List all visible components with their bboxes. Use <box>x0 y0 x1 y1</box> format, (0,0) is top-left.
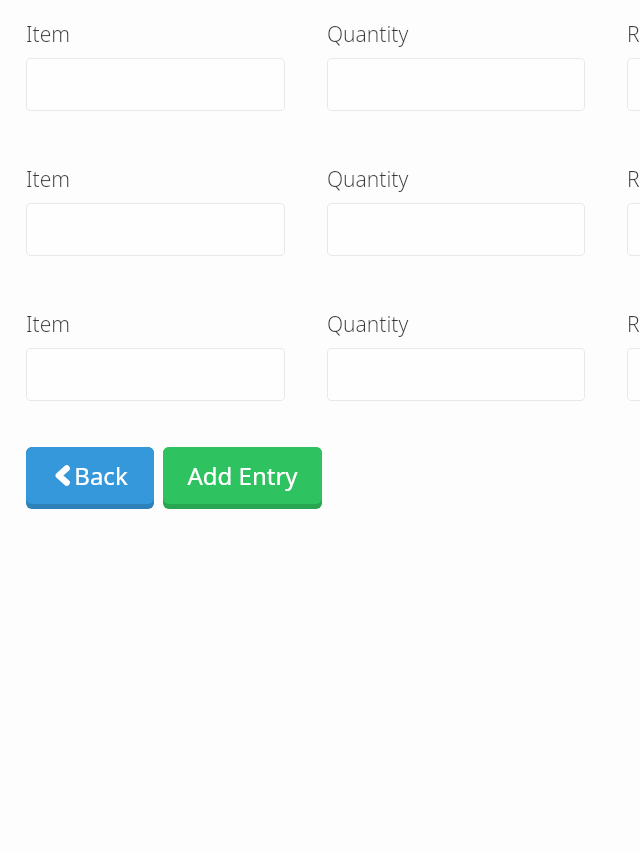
staticText: R <box>627 165 640 193</box>
staticText: R <box>627 20 640 48</box>
button[interactable]: Item <box>26 58 285 111</box>
button[interactable]: Back <box>26 447 154 509</box>
button[interactable]: Item <box>26 203 285 256</box>
button[interactable]: R <box>627 58 640 111</box>
staticText: Quantity <box>327 310 409 338</box>
button[interactable]: R <box>627 348 640 401</box>
button[interactable]: Quantity <box>327 203 585 256</box>
button[interactable]: Item <box>26 348 285 401</box>
staticText: Item <box>26 20 71 48</box>
other: Back <box>52 465 73 486</box>
staticText: R <box>627 310 640 338</box>
button[interactable]: Add Entry <box>163 447 322 509</box>
staticText: Add Entry <box>187 459 298 492</box>
staticText: Item <box>26 310 71 338</box>
staticText: Quantity <box>327 20 409 48</box>
staticText: Quantity <box>327 165 409 193</box>
staticText: Item <box>26 165 71 193</box>
button[interactable]: Quantity <box>327 348 585 401</box>
staticText: Back <box>74 459 128 492</box>
button[interactable]: Quantity <box>327 58 585 111</box>
button[interactable]: R <box>627 203 640 256</box>
